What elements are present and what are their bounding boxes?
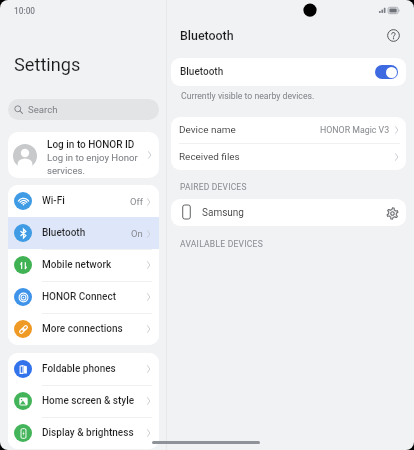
- button[interactable]: Bluetooth: [171, 58, 406, 86]
- staticText: HONOR Magic V3: [320, 125, 390, 135]
- button[interactable]: Home screen & style: [8, 385, 159, 417]
- button[interactable]: Mobile network: [8, 249, 159, 281]
- staticText: PAIRED DEVICES: [180, 182, 247, 192]
- staticText: Wi-Fi: [42, 195, 65, 207]
- staticText: More connections: [42, 323, 123, 335]
- staticText: 10:00: [14, 6, 36, 16]
- button[interactable]: Search: [8, 99, 159, 120]
- staticText: Mobile network: [42, 259, 112, 271]
- button[interactable]: Help: [383, 25, 403, 45]
- staticText: Home screen & style: [42, 395, 135, 407]
- staticText: Log in to enjoy Honor services.: [47, 152, 138, 176]
- staticText: Display & brightness: [42, 427, 134, 439]
- button[interactable]: HONOR Connect: [8, 281, 159, 313]
- button[interactable]: Log in to HONOR ID: [8, 132, 159, 178]
- button[interactable]: Device name: [171, 117, 406, 143]
- staticText: Currently visible to nearby devices.: [181, 91, 315, 101]
- staticText: Samsung: [202, 207, 244, 219]
- button[interactable]: Samsung: [171, 199, 406, 226]
- staticText: Bluetooth: [180, 66, 224, 78]
- staticText: Search: [28, 104, 58, 115]
- staticText: Log in to HONOR ID: [47, 139, 135, 151]
- staticText: On: [131, 228, 143, 239]
- staticText: AVAILABLE DEVICES: [180, 239, 263, 249]
- staticText: Bluetooth: [180, 28, 234, 43]
- button[interactable]: Wi-Fi: [8, 185, 159, 217]
- button[interactable]: Bluetooth: [8, 217, 159, 249]
- button[interactable]: Foldable phones: [8, 353, 159, 385]
- staticText: Off: [130, 196, 143, 207]
- staticText: Bluetooth: [42, 227, 86, 239]
- button[interactable]: Received files: [171, 144, 406, 170]
- staticText: Received files: [179, 151, 240, 163]
- button[interactable]: More connections: [8, 313, 159, 345]
- staticText: Device name: [179, 124, 236, 136]
- staticText: Settings: [14, 54, 81, 75]
- staticText: Foldable phones: [42, 363, 116, 375]
- staticText: HONOR Connect: [42, 291, 117, 303]
- button[interactable]: Display & brightness: [8, 417, 159, 449]
- button[interactable]: Device settings: [384, 205, 400, 221]
